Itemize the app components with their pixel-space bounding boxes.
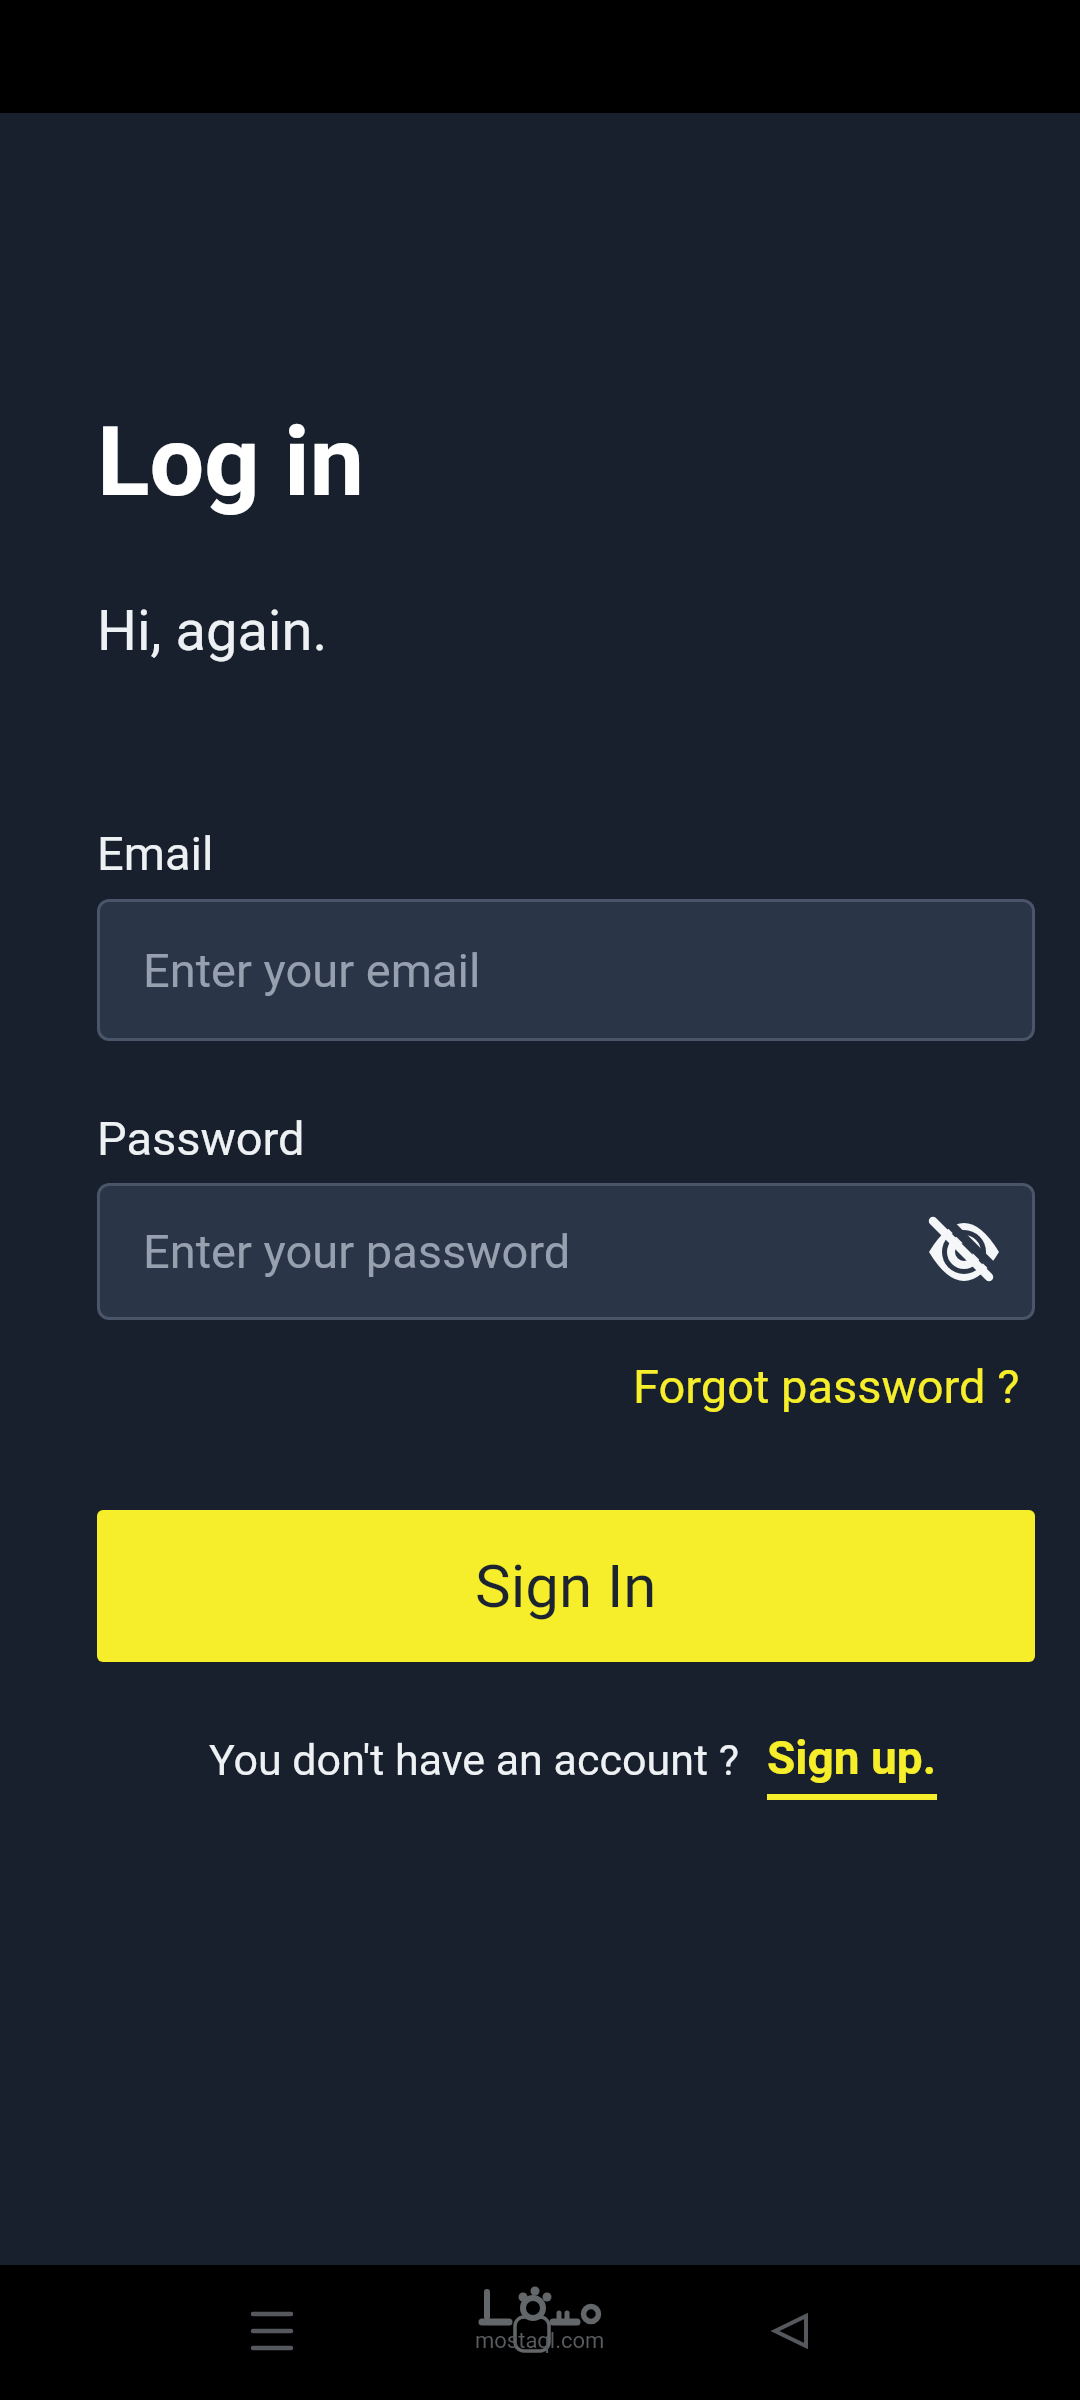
staticText: Log in	[97, 405, 364, 519]
staticText: You don't have an account ?	[209, 1735, 739, 1785]
button[interactable]: Forgot password ?	[633, 1359, 1020, 1414]
button[interactable]: Sign up.	[767, 1731, 937, 1800]
staticText: Enter your password	[143, 1224, 571, 1279]
button[interactable]: Enter your email	[97, 899, 1035, 1041]
button[interactable]: Enter your password	[97, 1183, 1035, 1320]
staticText: Sign up.	[767, 1731, 937, 1785]
staticText: Enter your email	[143, 943, 481, 998]
staticText: Sign In	[475, 1551, 657, 1621]
staticText: Password	[97, 1111, 305, 1166]
staticText: Email	[97, 826, 214, 881]
button[interactable]	[763, 2303, 819, 2359]
button[interactable]	[240, 2299, 304, 2363]
button[interactable]: Sign In	[97, 1510, 1035, 1662]
button[interactable]	[926, 1214, 1002, 1290]
staticText: mostaql.com	[475, 2328, 605, 2354]
staticText: Hi, again.	[97, 598, 328, 664]
